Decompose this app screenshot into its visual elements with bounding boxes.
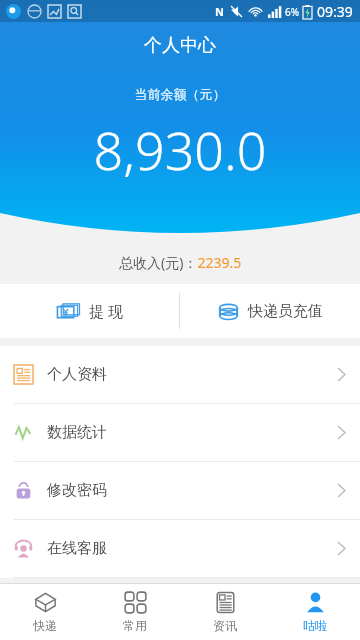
staticText: 提 现 bbox=[89, 301, 123, 321]
staticText: 快递 bbox=[33, 618, 57, 633]
staticText: 快递员充值 bbox=[248, 302, 323, 321]
staticText: 8,930.0 bbox=[0, 114, 360, 185]
staticText: 常用 bbox=[123, 618, 147, 633]
staticText: 咕啦 bbox=[303, 618, 327, 633]
staticText: N bbox=[215, 4, 224, 19]
staticText: 在线客服 bbox=[47, 539, 107, 558]
button[interactable]: 快递 bbox=[0, 584, 90, 640]
button[interactable]: 数据统计 bbox=[0, 404, 360, 461]
button[interactable]: 修改密码 bbox=[0, 462, 360, 519]
staticText: 6% bbox=[285, 5, 300, 19]
staticText: 个人资料 bbox=[47, 365, 107, 384]
button[interactable]: 提 现 bbox=[0, 284, 179, 338]
button[interactable]: 快递员充值 bbox=[180, 284, 360, 338]
staticText: 总收入(元)：2239.5 bbox=[119, 253, 242, 272]
staticText: 修改密码 bbox=[47, 481, 107, 500]
staticText: 当前余额（元） bbox=[0, 86, 360, 102]
staticText: 资讯 bbox=[213, 618, 237, 633]
staticText: 个人中心 bbox=[0, 34, 360, 57]
button[interactable]: 咕啦 bbox=[270, 584, 360, 640]
staticText: 数据统计 bbox=[47, 423, 107, 442]
button[interactable]: 常用 bbox=[90, 584, 180, 640]
staticText: 09:39 bbox=[317, 2, 353, 21]
button[interactable]: 资讯 bbox=[180, 584, 270, 640]
button[interactable]: 个人资料 bbox=[0, 346, 360, 403]
button[interactable]: 在线客服 bbox=[0, 520, 360, 577]
